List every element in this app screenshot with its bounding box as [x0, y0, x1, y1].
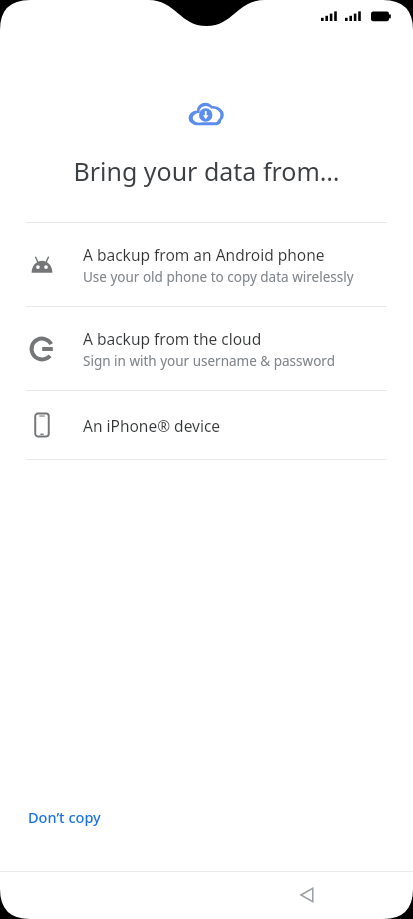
other: iPhone device — [22, 412, 62, 438]
other: Google cloud backup — [22, 336, 62, 362]
staticText: Sign in with your username & password — [83, 352, 335, 370]
staticText: Use your old phone to copy data wireless… — [83, 268, 354, 286]
staticText: Bring your data from… — [73, 154, 340, 188]
staticText: A backup from an Android phone — [83, 244, 325, 265]
button[interactable]: Android phone backup — [0, 223, 413, 306]
staticText: Don’t copy — [28, 807, 101, 827]
other: Android phone backup — [22, 252, 62, 278]
button[interactable]: Google cloud backup — [0, 307, 413, 390]
button[interactable]: Back — [283, 871, 331, 919]
button[interactable]: Don’t copy — [14, 799, 115, 835]
staticText: An iPhone® device — [83, 415, 221, 436]
staticText: A backup from the cloud — [83, 328, 262, 349]
button[interactable]: iPhone device — [0, 391, 413, 459]
